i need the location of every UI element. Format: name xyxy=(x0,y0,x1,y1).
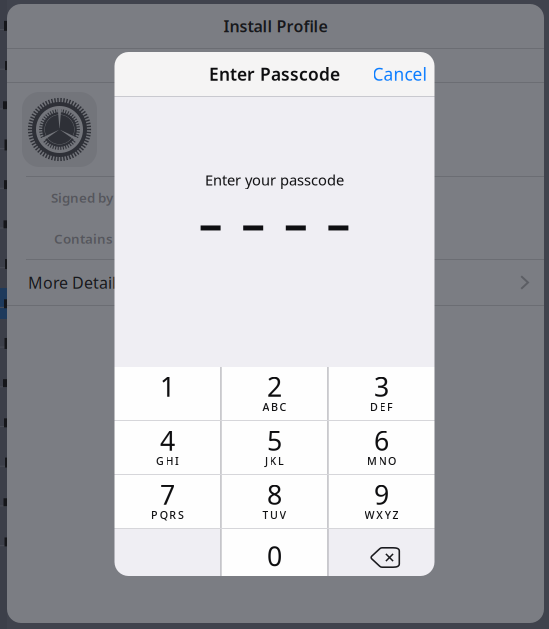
button[interactable]: 3 xyxy=(328,367,434,420)
staticText: 2 xyxy=(267,369,282,404)
staticText: M xyxy=(367,454,377,468)
button[interactable]: 9 xyxy=(328,475,434,528)
staticText: U xyxy=(270,508,278,522)
button[interactable]: More Details xyxy=(7,260,544,305)
staticText: E xyxy=(379,400,385,414)
staticText: I xyxy=(175,454,179,468)
button[interactable]: 8 xyxy=(221,475,327,528)
staticText: B xyxy=(271,400,278,414)
staticText: C xyxy=(280,400,287,414)
staticText: Signed by xyxy=(51,189,113,206)
staticText: N xyxy=(378,454,386,468)
staticText: D xyxy=(370,400,378,414)
button[interactable]: Delete xyxy=(328,529,434,576)
staticText: L xyxy=(278,454,284,468)
staticText: 7 xyxy=(160,477,175,512)
staticText: 6 xyxy=(374,423,389,458)
staticText: 1 xyxy=(160,369,175,404)
staticText: R xyxy=(169,508,176,522)
staticText: V xyxy=(280,508,287,522)
staticText: P xyxy=(151,508,158,522)
button[interactable]: Cancel xyxy=(372,50,434,97)
button[interactable]: 6 xyxy=(328,421,434,474)
staticText: F xyxy=(387,400,393,414)
staticText: 9 xyxy=(374,477,389,512)
button[interactable]: 7 xyxy=(114,475,220,528)
staticText: O xyxy=(388,454,396,468)
staticText: 5 xyxy=(267,423,282,458)
staticText: 3 xyxy=(374,369,389,404)
staticText: Contains xyxy=(54,230,113,247)
staticText: Enter Passcode xyxy=(209,62,340,85)
staticText: Install Profile xyxy=(223,15,327,37)
button[interactable]: 2 xyxy=(221,367,327,420)
staticText: A xyxy=(262,400,269,414)
staticText: More Details xyxy=(28,272,124,293)
button[interactable]: 1 xyxy=(114,367,220,420)
staticText: Cancel xyxy=(372,62,426,85)
staticText: K xyxy=(269,454,276,468)
staticText: S xyxy=(178,508,184,522)
staticText: H xyxy=(165,454,173,468)
staticText: Q xyxy=(160,508,168,522)
staticText: Z xyxy=(392,508,398,522)
staticText: Enter your passcode xyxy=(205,170,344,189)
button[interactable]: 0 xyxy=(221,529,327,576)
staticText: Y xyxy=(385,508,391,522)
staticText: G xyxy=(156,454,164,468)
staticText: W xyxy=(365,508,375,522)
staticText: X xyxy=(376,508,383,522)
staticText: J xyxy=(265,454,268,468)
staticText: 4 xyxy=(160,423,175,458)
staticText: 0 xyxy=(267,538,282,574)
button[interactable]: 5 xyxy=(221,421,327,474)
button[interactable]: 4 xyxy=(114,421,220,474)
staticText: 8 xyxy=(267,477,282,512)
staticText: T xyxy=(262,508,268,522)
